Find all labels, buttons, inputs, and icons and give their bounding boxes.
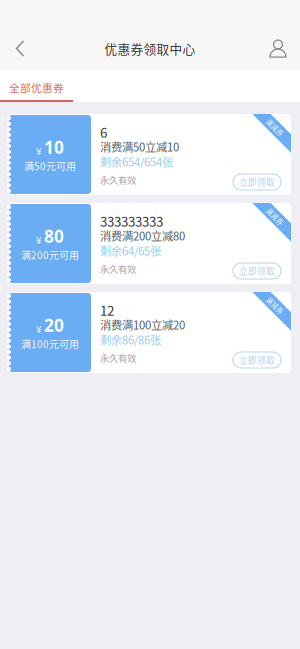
staticText: 消费满200立减80 — [100, 227, 185, 244]
staticText: 10 — [44, 135, 64, 159]
staticText: 立即领取 — [239, 354, 275, 366]
button[interactable]: Back — [0, 26, 40, 71]
staticText: ¥ — [36, 232, 42, 247]
staticText: 剩余64/65张 — [100, 242, 161, 259]
staticText: 满减券 — [264, 123, 285, 132]
staticText: 剩余86/86张 — [100, 331, 161, 348]
staticText: 20 — [44, 313, 64, 337]
button[interactable]: 满减券 — [9, 292, 291, 373]
staticText: 消费满100立减20 — [100, 316, 185, 333]
staticText: 满200元可用 — [21, 248, 79, 262]
button[interactable]: 满减券 — [9, 114, 291, 195]
staticText: 消费满50立减10 — [100, 138, 179, 155]
staticText: 全部优惠券 — [9, 80, 64, 95]
staticText: 6 — [100, 122, 107, 142]
staticText: 永久有效 — [100, 173, 136, 186]
staticText: 满减券 — [264, 301, 285, 310]
staticText: ¥ — [36, 321, 42, 336]
staticText: 满50元可用 — [24, 159, 76, 173]
button[interactable]: 全部优惠券 — [0, 71, 73, 102]
staticText: 永久有效 — [100, 351, 136, 364]
staticText: 满减券 — [264, 212, 285, 221]
staticText: 立即领取 — [239, 265, 275, 277]
staticText: 优惠券领取中心 — [104, 39, 195, 58]
button[interactable]: 满减券 — [9, 203, 291, 284]
staticText: 剩余654/654张 — [100, 153, 173, 170]
staticText: ¥ — [36, 143, 42, 158]
staticText: 333333333 — [100, 211, 163, 231]
button[interactable]: Profile — [256, 26, 300, 71]
staticText: 80 — [44, 224, 64, 248]
staticText: 满100元可用 — [21, 337, 79, 351]
staticText: 立即领取 — [239, 176, 275, 188]
staticText: 永久有效 — [100, 262, 136, 275]
staticText: 12 — [100, 300, 114, 320]
